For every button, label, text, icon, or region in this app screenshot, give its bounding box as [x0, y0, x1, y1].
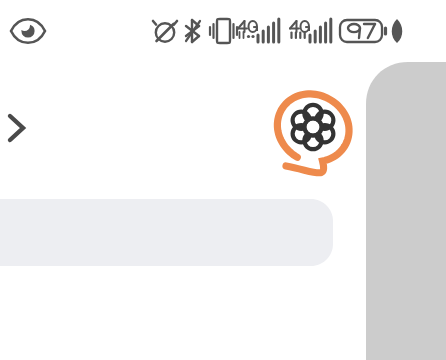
- button[interactable]: Next: [2, 108, 36, 148]
- button[interactable]: Flower app: [266, 82, 360, 178]
- button[interactable]: Eye protection mode: [6, 14, 50, 48]
